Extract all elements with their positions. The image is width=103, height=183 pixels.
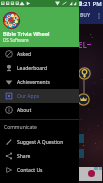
button[interactable]: Leaderboard: [0, 61, 79, 75]
staticText: Contact Us: [17, 167, 43, 174]
button[interactable]: Asked: [0, 47, 79, 61]
staticText: Communicate: [4, 124, 37, 131]
button[interactable]: Share: [0, 149, 79, 163]
button[interactable]: More options: [95, 7, 103, 24]
button[interactable]: Achievements: [0, 75, 79, 89]
button[interactable]: Suggest A Question: [0, 135, 79, 149]
staticText: Achievements: [17, 79, 50, 86]
staticText: DS Software: [3, 37, 29, 43]
button[interactable]: Advertisement: [79, 167, 102, 181]
button[interactable]: BUY: [79, 8, 92, 23]
button[interactable]: Contact Us: [0, 163, 79, 177]
staticText: Suggest A Question: [17, 139, 64, 146]
staticText: EL: [78, 39, 87, 50]
staticText: Our Apps: [17, 93, 40, 100]
staticText: Share: [17, 153, 31, 160]
staticText: Asked: [17, 51, 32, 58]
staticText: Leaderboard: [17, 65, 48, 72]
staticText: 2:21 PM: [79, 0, 102, 7]
staticText: Bible Trivia Wheel: [3, 30, 50, 37]
button[interactable]: About: [0, 103, 79, 117]
staticText: BUY: [80, 12, 91, 19]
staticText: About: [17, 107, 32, 114]
button[interactable]: Our Apps: [0, 89, 79, 103]
